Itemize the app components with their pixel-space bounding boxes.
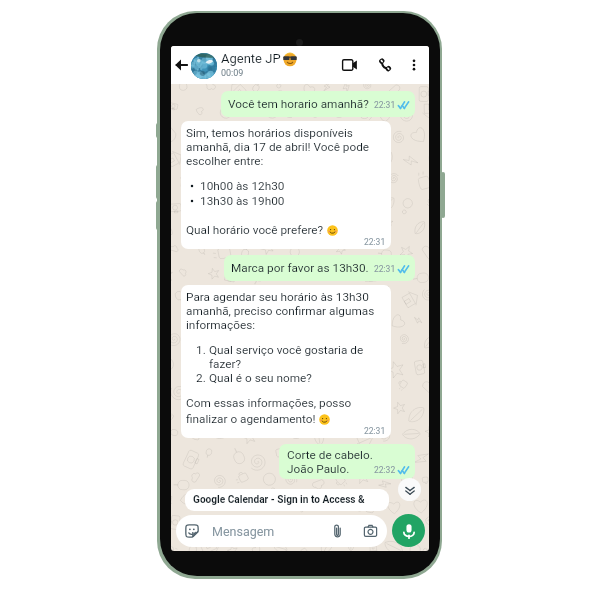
button[interactable]: Attach (326, 520, 348, 542)
staticText: Você tem horario amanhã? (228, 97, 369, 111)
button[interactable]: Back (172, 56, 190, 74)
staticText: Mensagem (212, 524, 326, 539)
button[interactable]: Profile photo (191, 53, 217, 79)
staticText: 22:31 (364, 426, 386, 436)
button[interactable]: Marca por favor as 13h30. (224, 255, 415, 281)
staticText: Sim, temos horários disponíveis amanhã, … (186, 126, 386, 168)
button[interactable]: Para agendar seu horário às 13h30 amanhã… (181, 285, 391, 438)
staticText: Com essas informações, posso (186, 396, 352, 410)
staticText: Qual horário você prefere? (186, 223, 327, 237)
staticText: Marca por favor as 13h30. (231, 261, 369, 275)
button[interactable]: Voice message (392, 514, 425, 547)
staticText: 22:32 (374, 465, 396, 475)
button[interactable]: Camera (359, 520, 381, 542)
staticText: 13h30 às 19h00 (200, 194, 285, 208)
staticText: Google Calendar - Sign in to Access & (193, 494, 365, 506)
button[interactable]: Google Calendar - Sign in to Access & (185, 489, 389, 511)
button[interactable]: Stickers (176, 515, 387, 547)
staticText: 22:31 (374, 100, 396, 110)
button[interactable]: Stickers (183, 522, 201, 540)
button[interactable]: Voice call (372, 52, 398, 78)
staticText: 10h00 às 12h30 (200, 179, 285, 193)
button[interactable]: Você tem horario amanhã? (221, 91, 415, 117)
staticText: Qual é o seu nome? (209, 371, 312, 385)
staticText: Corte de cabelo. (287, 448, 373, 462)
button[interactable]: Corte de cabelo. (279, 444, 415, 479)
button[interactable]: More options (402, 53, 426, 77)
staticText: João Paulo. (287, 462, 350, 476)
staticText: 22:31 (374, 264, 396, 274)
staticText: Agente JP (221, 51, 281, 66)
staticText: finalizar o agendamento! (186, 412, 319, 426)
staticText: Qual serviço você gostaria de fazer? (209, 343, 378, 371)
button[interactable]: Sim, temos horários disponíveis amanhã, … (181, 121, 391, 249)
button[interactable]: Scroll to bottom (398, 478, 421, 501)
staticText: 2. (196, 371, 206, 385)
staticText: Para agendar seu horário às 13h30 amanhã… (186, 290, 386, 332)
staticText: 00:09 (221, 68, 244, 79)
staticText: 1. (196, 343, 206, 357)
staticText: 22:31 (364, 237, 386, 247)
button[interactable]: Video call (336, 52, 362, 78)
button[interactable]: Agente JP (221, 51, 336, 79)
